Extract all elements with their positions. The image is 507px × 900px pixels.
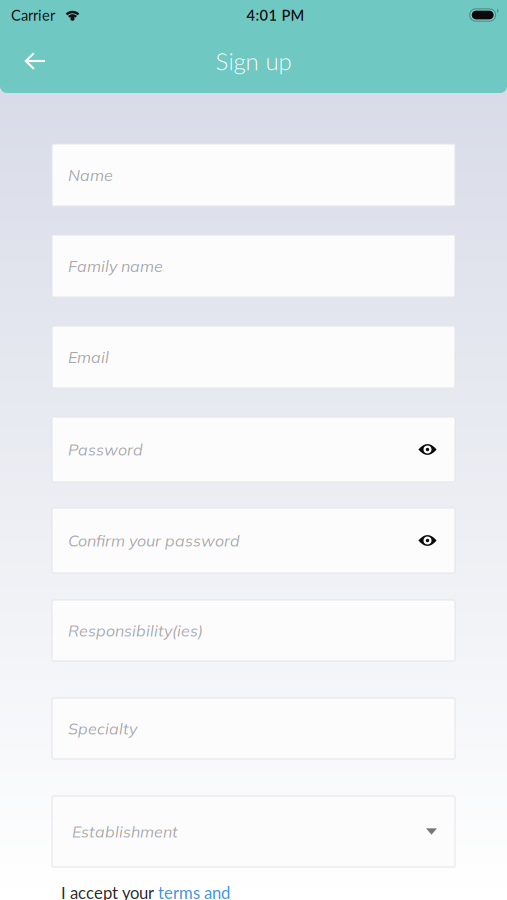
staticText: 4:01 PM — [246, 6, 304, 24]
button[interactable]: Responsibility(ies) — [52, 600, 455, 661]
staticText: Family name — [68, 256, 163, 276]
button[interactable]: Name — [52, 144, 455, 206]
staticText: Sign up — [215, 47, 291, 75]
staticText: Password — [68, 439, 143, 460]
staticText: Specialty — [68, 718, 137, 739]
staticText: Carrier — [11, 6, 55, 24]
staticText: Email — [68, 347, 109, 367]
button[interactable]: I accept your — [61, 882, 230, 900]
button[interactable]: Back — [0, 38, 56, 84]
button[interactable]: Confirm your password — [52, 508, 455, 573]
button[interactable]: Email — [52, 326, 455, 388]
staticText: I accept your — [61, 882, 158, 900]
button[interactable]: Specialty — [52, 698, 455, 759]
button[interactable]: Establishment — [52, 796, 455, 867]
staticText: Name — [68, 165, 113, 185]
button[interactable]: Password — [52, 417, 455, 482]
staticText: terms and — [158, 882, 230, 900]
staticText: Establishment — [72, 821, 178, 842]
staticText: Responsibility(ies) — [68, 620, 203, 641]
button[interactable]: Family name — [52, 235, 455, 297]
staticText: Confirm your password — [68, 530, 240, 551]
